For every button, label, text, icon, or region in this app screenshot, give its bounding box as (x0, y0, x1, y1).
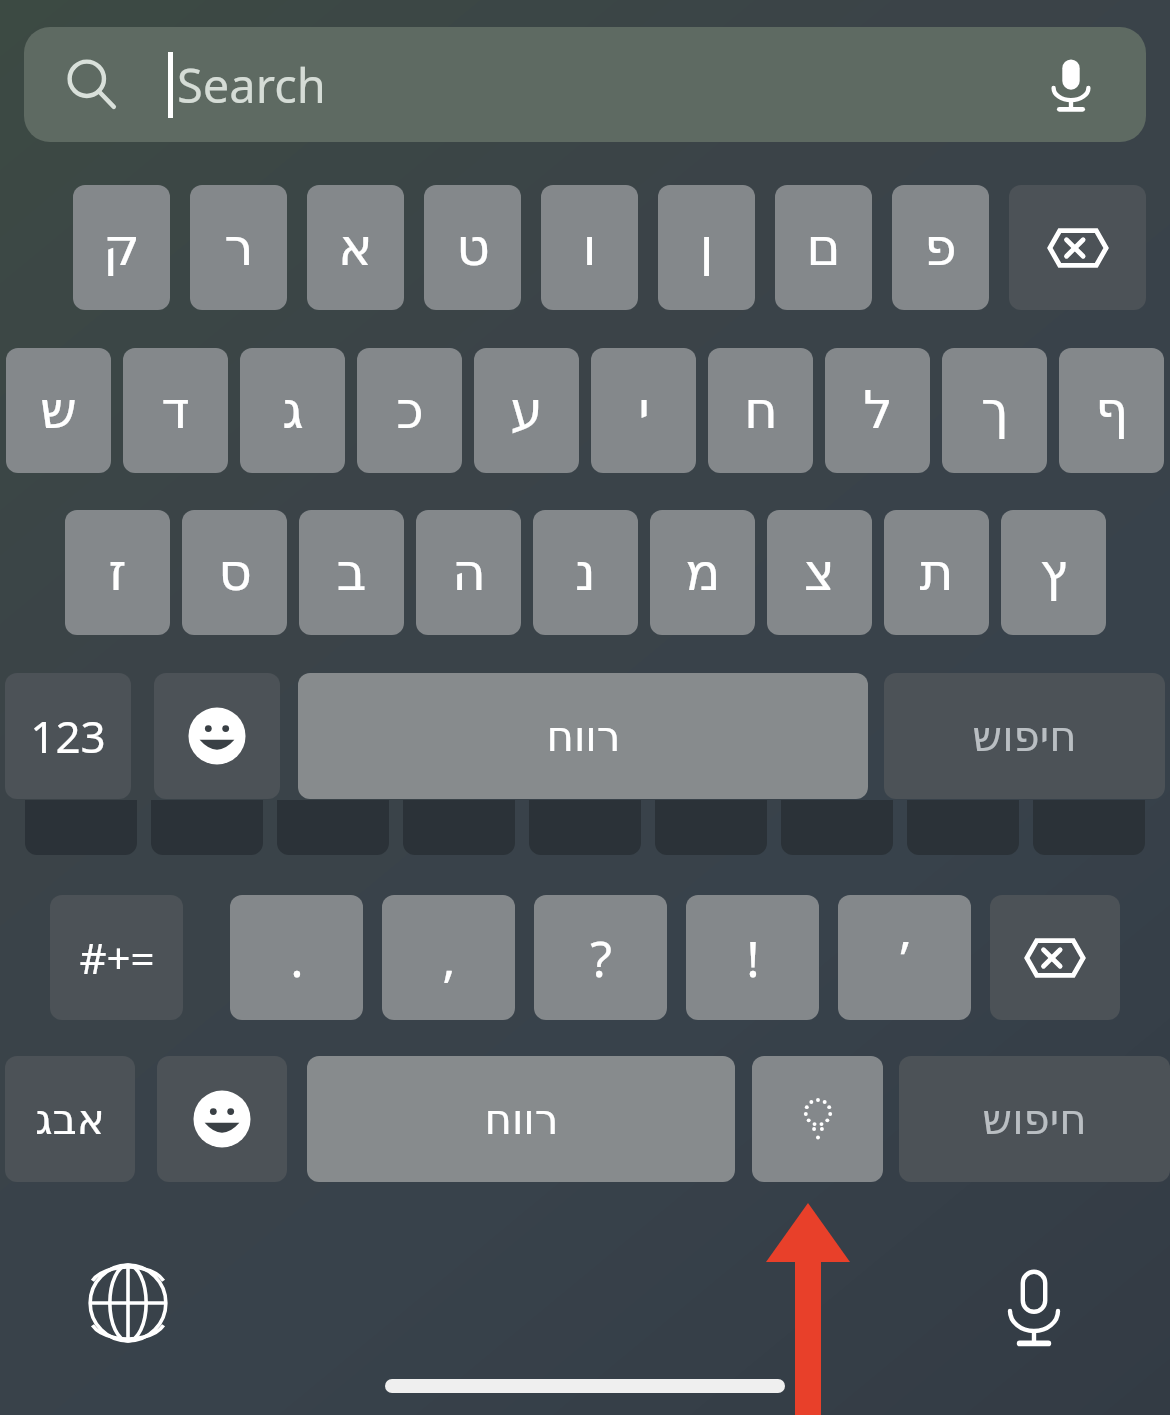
button[interactable]: Voice search (1042, 56, 1100, 114)
button[interactable]: ל (825, 348, 930, 473)
staticText: ר (224, 217, 254, 278)
staticText: ס (218, 542, 252, 603)
button[interactable]: , (382, 895, 515, 1020)
button[interactable]: ע (474, 348, 579, 473)
staticText: ק (103, 217, 140, 278)
staticText: חיפוש (972, 712, 1077, 761)
button[interactable]: Nikud (752, 1056, 883, 1182)
button[interactable]: #+= (50, 895, 183, 1020)
staticText: #+= (79, 929, 155, 986)
staticText: ש (40, 380, 77, 441)
staticText: , (442, 924, 456, 992)
button[interactable]: ת (884, 510, 989, 635)
staticText: ע (510, 380, 543, 441)
button[interactable]: ג (240, 348, 345, 473)
staticText: ח (744, 380, 778, 441)
button[interactable]: ! (686, 895, 819, 1020)
button[interactable]: ס (182, 510, 287, 635)
button[interactable]: 123 (5, 673, 131, 799)
button[interactable]: מ (650, 510, 755, 635)
staticText: ף (1095, 380, 1129, 441)
button[interactable]: ? (534, 895, 667, 1020)
staticText: ט (456, 217, 490, 278)
button[interactable]: ר (190, 185, 287, 310)
staticText: . (290, 924, 304, 992)
button[interactable]: ב (299, 510, 404, 635)
staticText: ז (108, 542, 127, 603)
staticText: ם (806, 217, 841, 278)
button[interactable]: אבג (5, 1056, 135, 1182)
button[interactable]: נ (533, 510, 638, 635)
staticText: י (638, 380, 650, 441)
button[interactable]: ד (123, 348, 228, 473)
button[interactable]: ן (658, 185, 755, 310)
button[interactable]: Emoji (154, 673, 280, 799)
button[interactable]: רווח (307, 1056, 735, 1182)
button[interactable]: צ (767, 510, 872, 635)
button[interactable]: חיפוש (899, 1056, 1170, 1182)
button[interactable]: א (307, 185, 404, 310)
button[interactable]: Dictation (988, 1261, 1080, 1353)
staticText: ה (452, 542, 486, 603)
staticText: 123 (30, 706, 106, 766)
staticText: ך (981, 380, 1009, 441)
staticText: חיפוש (982, 1095, 1087, 1144)
staticText: רווח (484, 1095, 559, 1144)
button[interactable]: ש (6, 348, 111, 473)
button[interactable]: Delete (990, 895, 1120, 1020)
button[interactable]: ’ (838, 895, 971, 1020)
staticText: Search (177, 53, 326, 117)
button[interactable]: ח (708, 348, 813, 473)
button[interactable]: ק (73, 185, 170, 310)
button[interactable]: פ (892, 185, 989, 310)
staticText: א (338, 217, 373, 278)
staticText: ג (282, 380, 304, 441)
button[interactable]: ך (942, 348, 1047, 473)
button[interactable]: ם (775, 185, 872, 310)
button[interactable]: . (230, 895, 363, 1020)
staticText: אבג (35, 1095, 105, 1144)
staticText: ב (336, 542, 367, 603)
staticText: ’ (900, 924, 909, 992)
button[interactable]: ף (1059, 348, 1164, 473)
staticText: ! (746, 924, 760, 992)
staticText: צ (804, 542, 835, 603)
button[interactable]: רווח (298, 673, 868, 799)
button[interactable]: Emoji (157, 1056, 287, 1182)
button[interactable]: Search (24, 27, 1146, 142)
staticText: ן (699, 217, 714, 278)
staticText: כ (396, 380, 424, 441)
staticText: רווח (546, 712, 621, 761)
button[interactable]: ו (541, 185, 638, 310)
staticText: ל (863, 380, 893, 441)
staticText: ד (161, 380, 190, 441)
button[interactable]: י (591, 348, 696, 473)
staticText: מ (685, 542, 721, 603)
button[interactable]: ז (65, 510, 170, 635)
staticText: פ (924, 217, 957, 278)
staticText: ת (919, 542, 954, 603)
staticText: נ (575, 542, 596, 603)
staticText: ? (590, 924, 612, 992)
button[interactable]: ט (424, 185, 521, 310)
button[interactable]: ץ (1001, 510, 1106, 635)
staticText: ץ (1039, 542, 1068, 603)
staticText: ו (582, 217, 597, 278)
button[interactable]: Delete (1009, 185, 1146, 310)
button[interactable]: Change keyboard (82, 1257, 174, 1349)
button[interactable]: חיפוש (884, 673, 1165, 799)
button[interactable]: ה (416, 510, 521, 635)
button[interactable]: כ (357, 348, 462, 473)
